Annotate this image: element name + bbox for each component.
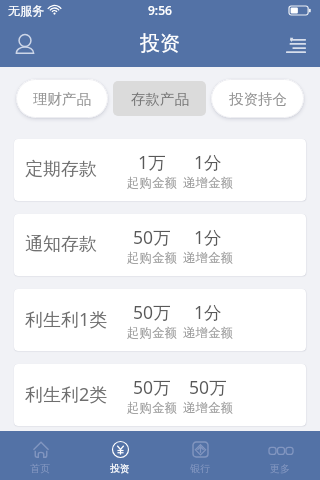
button[interactable]: 更多 [240,431,320,480]
staticText: 存款产品 [131,90,189,108]
button[interactable]: 利生利2类 [14,364,306,426]
staticText: 1分 [194,300,222,324]
staticText: 投资 [140,31,180,56]
staticText: 50万 [133,225,171,249]
button[interactable]: 通知存款 [14,214,306,276]
button[interactable]: Filter [276,24,316,64]
button[interactable]: 银行 [160,431,240,480]
staticText: 利生利1类 [25,307,108,332]
staticText: 递增金额 [183,250,233,266]
staticText: 递增金额 [183,325,233,341]
staticText: 投资 [110,462,130,475]
staticText: 起购金额 [127,400,177,416]
staticText: 利生利2类 [25,382,108,407]
button[interactable]: 投资 [80,431,160,480]
button[interactable]: Profile [5,24,45,64]
staticText: 1分 [194,150,222,174]
staticText: 递增金额 [183,400,233,416]
staticText: 1万 [138,150,166,174]
staticText: 递增金额 [183,175,233,191]
staticText: 理财产品 [33,90,91,108]
staticText: 50万 [133,375,171,399]
staticText: 50万 [189,375,227,399]
staticText: 起购金额 [127,325,177,341]
staticText: 9:56 [148,2,172,18]
staticText: 1分 [194,225,222,249]
button[interactable]: 投资持仓 [211,79,304,118]
staticText: 50万 [133,300,171,324]
staticText: 无服务 [8,3,44,18]
button[interactable]: 利生利1类 [14,289,306,351]
staticText: 起购金额 [127,175,177,191]
staticText: 银行 [190,462,210,475]
staticText: 更多 [270,462,290,475]
staticText: 投资持仓 [229,90,287,108]
button[interactable]: 首页 [0,431,80,480]
staticText: 首页 [30,462,50,475]
button[interactable]: 存款产品 [113,81,206,116]
staticText: 起购金额 [127,250,177,266]
staticText: 通知存款 [25,233,97,256]
staticText: 定期存款 [25,158,97,181]
button[interactable]: 定期存款 [14,139,306,201]
button[interactable]: 理财产品 [16,79,108,118]
